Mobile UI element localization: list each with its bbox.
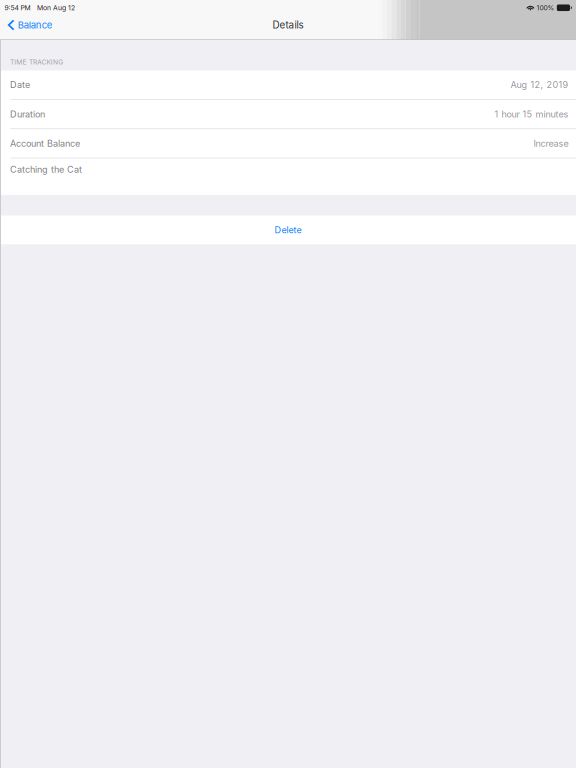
button[interactable]: Balance xyxy=(0,14,61,36)
staticText: Date xyxy=(10,79,30,90)
staticText: TIME TRACKING xyxy=(10,58,63,66)
staticText: Catching the Cat xyxy=(10,164,82,175)
staticText: Balance xyxy=(18,19,53,31)
button[interactable]: Catching the Cat xyxy=(0,158,576,195)
staticText: 100% xyxy=(536,4,554,12)
staticText: 9:54 PM xyxy=(4,4,30,12)
staticText: Account Balance xyxy=(10,138,80,149)
staticText: Increase xyxy=(533,138,568,149)
staticText: Duration xyxy=(10,109,45,120)
button[interactable]: Delete xyxy=(0,215,576,244)
staticText: Delete xyxy=(274,224,301,235)
staticText: 1 hour 15 minutes xyxy=(494,109,568,120)
button[interactable]: Date xyxy=(0,70,576,99)
staticText: Details xyxy=(272,19,303,31)
button[interactable]: Duration xyxy=(0,100,576,128)
staticText: Aug 12, 2019 xyxy=(510,79,568,90)
button[interactable]: Account Balance xyxy=(0,129,576,158)
staticText: Mon Aug 12 xyxy=(37,4,75,12)
